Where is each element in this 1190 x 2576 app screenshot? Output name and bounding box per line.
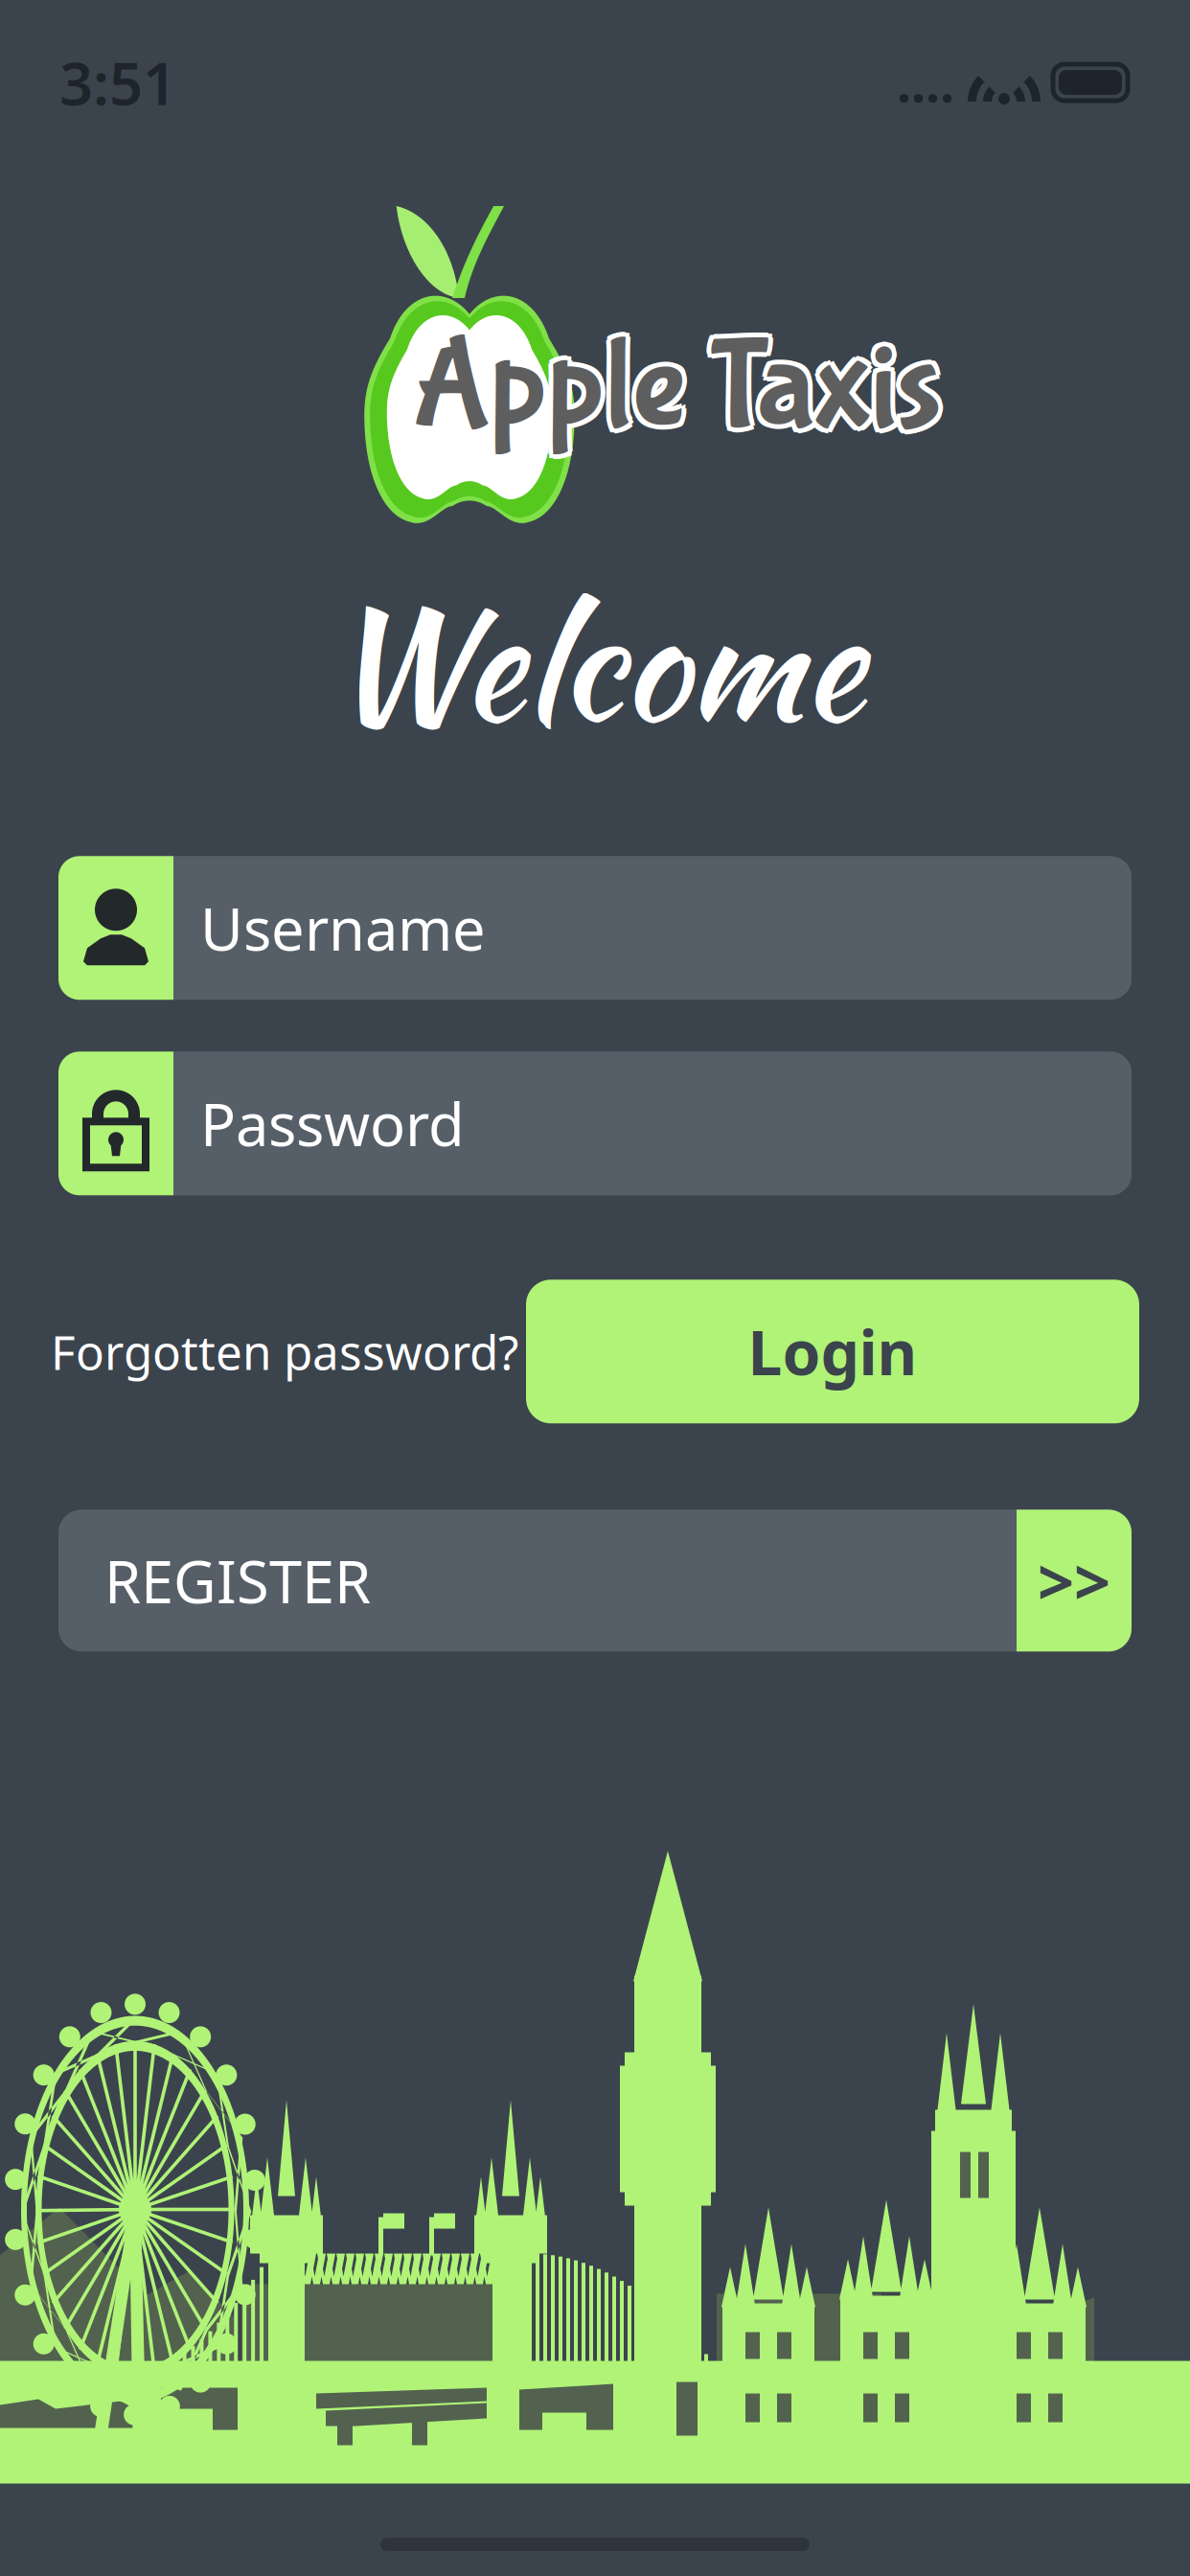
button[interactable]: Login <box>526 1280 1139 1423</box>
staticText: .... <box>897 48 954 116</box>
staticText: Apple Taxis <box>413 310 942 456</box>
staticText: Password <box>200 1084 465 1162</box>
staticText: Apple Taxis <box>417 311 946 457</box>
button[interactable]: REGISTER <box>58 1510 1132 1651</box>
staticText: Login <box>748 1311 917 1392</box>
staticText: >> <box>1038 1538 1110 1623</box>
staticText: REGISTER <box>104 1542 371 1620</box>
button[interactable]: Password <box>58 1052 1132 1195</box>
staticText: Username <box>200 889 486 967</box>
staticText: Apple Taxis <box>409 311 938 457</box>
button[interactable]: Forgotten password? <box>51 1320 518 1383</box>
staticText: Forgotten password? <box>51 1320 518 1383</box>
staticText: Apple Taxis <box>413 315 942 461</box>
staticText: Apple Taxis <box>409 319 938 465</box>
staticText: Apple Taxis <box>413 320 942 466</box>
staticText: Apple Taxis <box>408 315 937 461</box>
staticText: Apple Taxis <box>417 319 946 465</box>
staticText: 3:51 <box>59 43 176 121</box>
staticText: Apple Taxis <box>418 315 947 461</box>
button[interactable]: Username <box>58 856 1132 1000</box>
staticText: Welcome <box>326 555 864 774</box>
